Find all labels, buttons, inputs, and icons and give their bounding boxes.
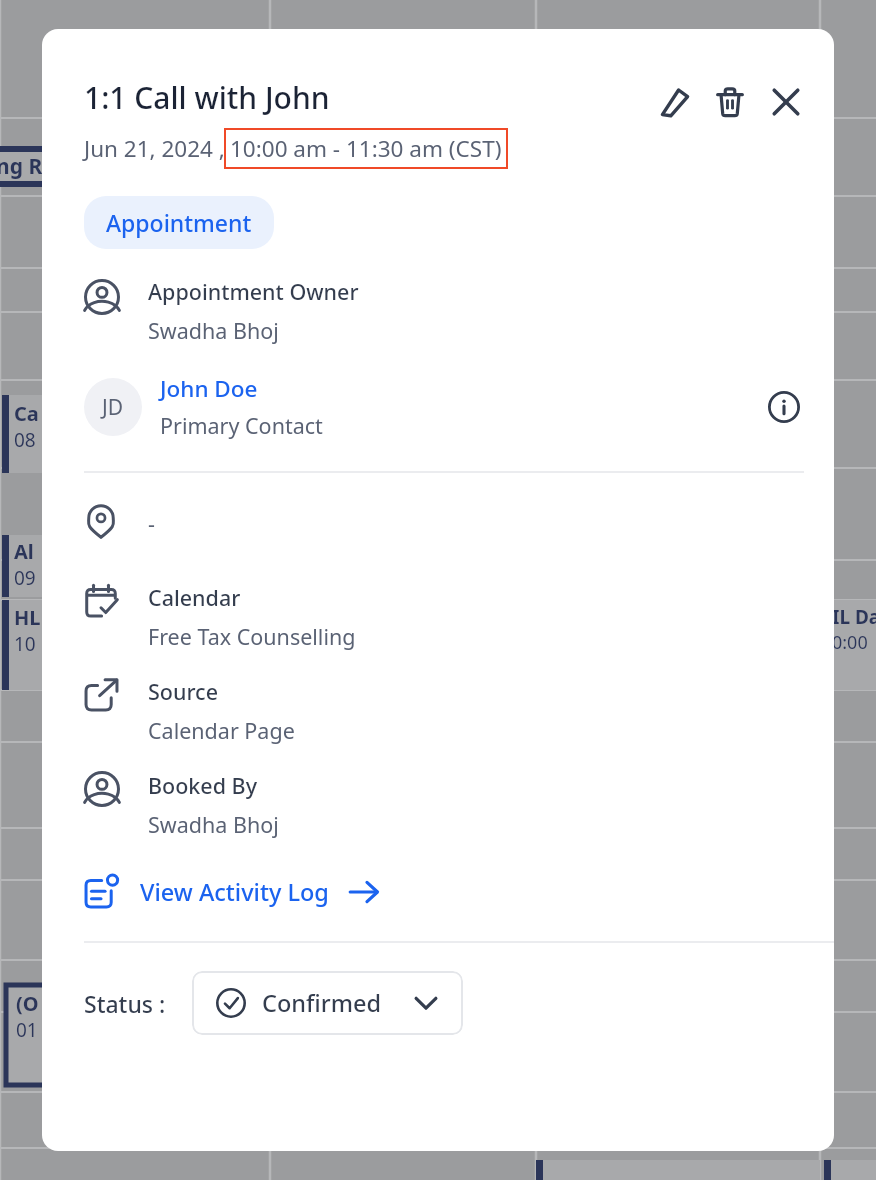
staticText: Appointment Owner [148,277,359,306]
staticText: Source [148,677,219,706]
staticText: Appointment [106,207,252,238]
staticText: Swadha Bhoj [148,810,279,839]
button[interactable]: View Activity Log [84,871,391,913]
staticText: Ca [14,400,39,427]
staticText: Calendar Page [148,716,295,745]
staticText: - [148,509,155,538]
button[interactable]: Appointment [84,196,274,249]
staticText: JD [102,393,124,422]
staticText: Primary Contact [160,411,323,440]
staticText: (O [16,990,39,1017]
staticText: View Activity Log [140,876,329,908]
button[interactable]: JD [42,373,834,440]
staticText: Jun 21, 2024 , [84,133,225,164]
staticText: Al [14,538,34,565]
button[interactable]: Confirmed [192,971,463,1035]
button[interactable]: Close [772,88,800,116]
staticText: ng R [0,152,43,181]
staticText: IL Da [832,604,876,630]
staticText: Swadha Bhoj [148,316,279,345]
staticText: HL [14,604,41,631]
staticText: Status : [84,988,166,1019]
staticText: Confirmed [262,987,381,1019]
button[interactable]: Delete [716,88,744,116]
staticText: 0:00 [832,630,868,655]
staticText: Booked By [148,771,258,800]
button[interactable]: Edit [660,87,690,117]
staticText: 08 [14,427,36,453]
staticText: Free Tax Counselling [148,622,356,651]
button[interactable]: Contact information [768,391,800,423]
staticText: 10 [14,631,36,657]
staticText: 1:1 Call with John [84,77,330,118]
staticText: John Doe [160,373,258,404]
staticText: Calendar [148,583,241,612]
staticText: 10:00 am - 11:30 am (CST) [230,133,502,164]
staticText: 09 [14,565,36,591]
staticText: 01 [16,1017,38,1043]
